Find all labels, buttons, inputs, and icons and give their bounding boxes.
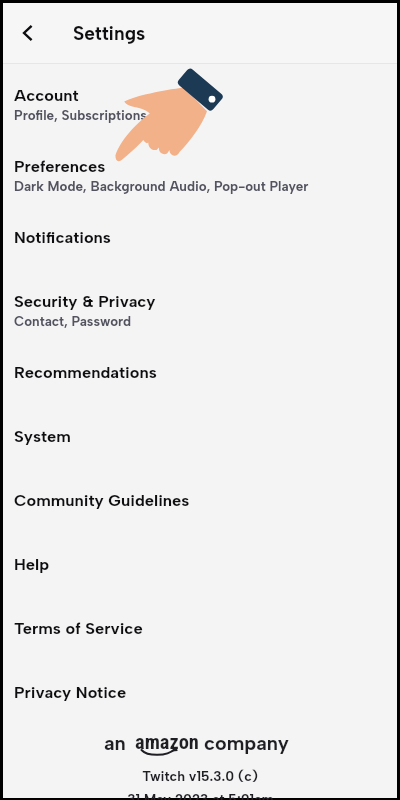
button[interactable]: Recommendations — [3, 341, 397, 405]
staticText: Security & Privacy — [14, 291, 156, 311]
staticText: Settings — [73, 22, 146, 45]
staticText: amazon — [135, 730, 199, 754]
button[interactable]: Back — [8, 13, 48, 53]
staticText: Help — [14, 554, 50, 574]
staticText: Privacy Notice — [14, 682, 127, 702]
button[interactable]: Security & Privacy — [3, 270, 397, 341]
staticText: Notifications — [14, 227, 111, 247]
staticText: System — [14, 426, 71, 446]
staticText: Profile, Subscriptions — [14, 107, 147, 123]
staticText: Preferences — [14, 156, 106, 176]
staticText: 31 May 2023 at 5:01am — [127, 791, 274, 800]
button[interactable]: Terms of Service — [3, 597, 397, 661]
staticText: company — [204, 731, 289, 755]
button[interactable]: System — [3, 405, 397, 469]
button[interactable]: Privacy Notice — [3, 661, 397, 725]
staticText: Terms of Service — [14, 618, 143, 638]
staticText: an — [104, 731, 126, 755]
staticText: Dark Mode, Background Audio, Pop-out Pla… — [14, 178, 309, 194]
button[interactable]: Community Guidelines — [3, 469, 397, 533]
button[interactable]: Account — [3, 64, 397, 135]
staticText: Recommendations — [14, 362, 157, 382]
button[interactable]: Preferences — [3, 135, 397, 206]
button[interactable]: Help — [3, 533, 397, 597]
staticText: Contact, Password — [14, 313, 132, 329]
staticText: Community Guidelines — [14, 490, 190, 510]
button[interactable]: Notifications — [3, 206, 397, 270]
staticText: Account — [14, 85, 79, 105]
staticText: Twitch v15.3.0 (c) — [142, 768, 258, 785]
